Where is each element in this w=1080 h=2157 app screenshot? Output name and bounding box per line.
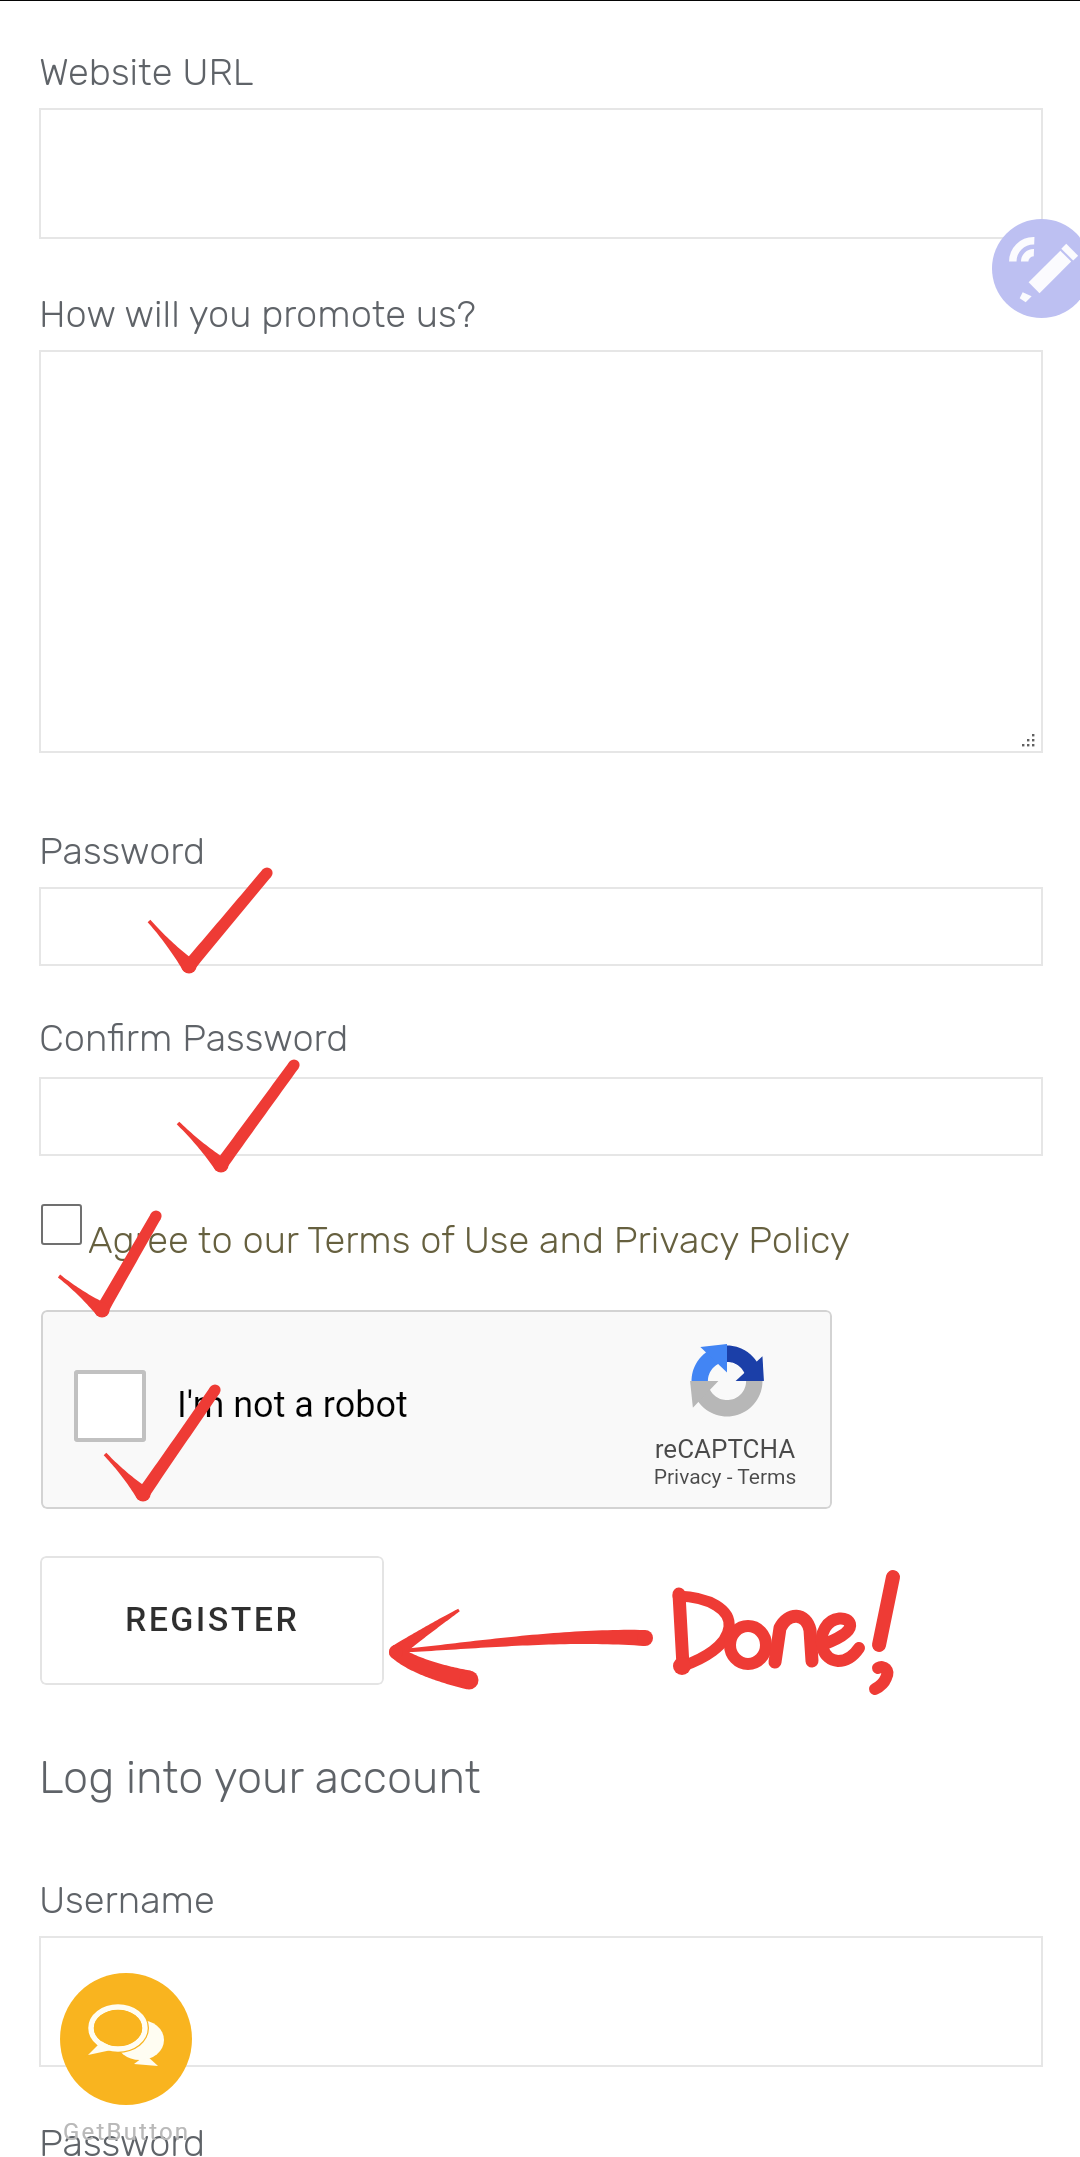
button[interactable]: Agree to terms checkbox [41,1204,82,1245]
staticText: Password [39,2120,206,2157]
button[interactable] [39,108,1043,239]
button[interactable]: Edit page [992,219,1080,318]
button[interactable] [39,1936,1043,2067]
button[interactable]: I'm not a robot [41,1310,832,1509]
staticText: Website URL [39,49,254,94]
staticText: Confirm Password [39,1015,349,1060]
staticText: Privacy - Terms [644,1465,806,1490]
staticText: reCAPTCHA [644,1434,806,1464]
button[interactable]: REGISTER [40,1556,384,1685]
staticText: Log into your account [39,1751,481,1804]
button[interactable] [39,350,1043,753]
button[interactable]: Open chat [60,1973,192,2105]
staticText: REGISTER [125,1599,300,1639]
button[interactable] [39,887,1043,966]
staticText: GetButton [63,2118,191,2146]
staticText: How will you promote us? [39,291,476,336]
staticText: Username [39,1877,215,1922]
staticText: I'm not a robot [177,1384,408,1426]
staticText: Agree to our Terms of Use and Privacy Po… [88,1217,851,1262]
button[interactable] [39,1077,1043,1156]
staticText: Password [39,828,206,873]
